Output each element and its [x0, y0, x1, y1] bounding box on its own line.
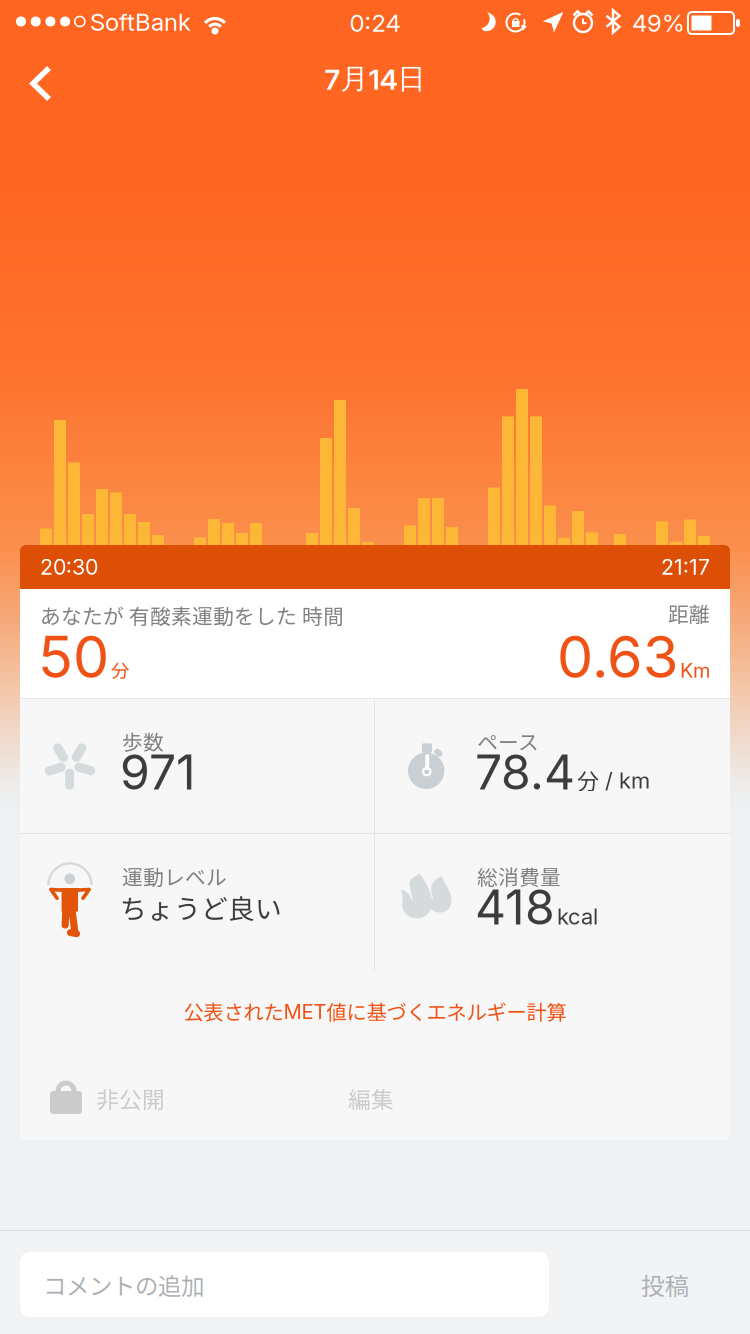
staticText: Km — [680, 658, 710, 683]
staticText: 21:17 — [661, 554, 710, 580]
button[interactable]: コメントの追加 — [0, 1230, 750, 1334]
staticText: 分 / km — [577, 764, 650, 796]
staticText: 0:24 — [349, 8, 400, 37]
staticText: 7月14日 — [324, 61, 425, 97]
button[interactable]: 非公開 — [20, 545, 730, 1140]
staticText: 20:30 — [40, 554, 98, 580]
staticText: 総消費量 — [477, 861, 561, 891]
button[interactable]: 投稿 — [0, 1230, 750, 1334]
staticText: ちょうど良い — [120, 888, 282, 926]
staticText: あなたが 有酸素運動をした 時間 — [40, 600, 344, 630]
staticText: kcal — [557, 903, 598, 930]
staticText: SoftBank — [90, 7, 191, 36]
staticText: 歩数 — [122, 726, 164, 756]
button[interactable]: Back — [0, 0, 750, 1334]
staticText: 投稿 — [641, 1267, 689, 1302]
staticText: 50 — [38, 622, 109, 692]
staticText: 編集 — [348, 1082, 394, 1114]
staticText: 非公開 — [96, 1082, 165, 1114]
staticText: 0.63 — [557, 622, 678, 692]
staticText: 距離 — [668, 598, 710, 628]
staticText: 公表されたMET値に基づくエネルギー計算 — [183, 996, 566, 1026]
staticText: 49% — [632, 8, 685, 37]
staticText: コメントの追加 — [43, 1268, 204, 1301]
staticText: 運動レベル — [122, 861, 227, 891]
button[interactable]: 編集 — [20, 545, 730, 1140]
staticText: 971 — [120, 743, 196, 801]
staticText: 分 — [111, 656, 130, 683]
staticText: 418 — [475, 878, 555, 936]
staticText: ペース — [477, 726, 539, 756]
staticText: 78.4 — [475, 743, 575, 801]
